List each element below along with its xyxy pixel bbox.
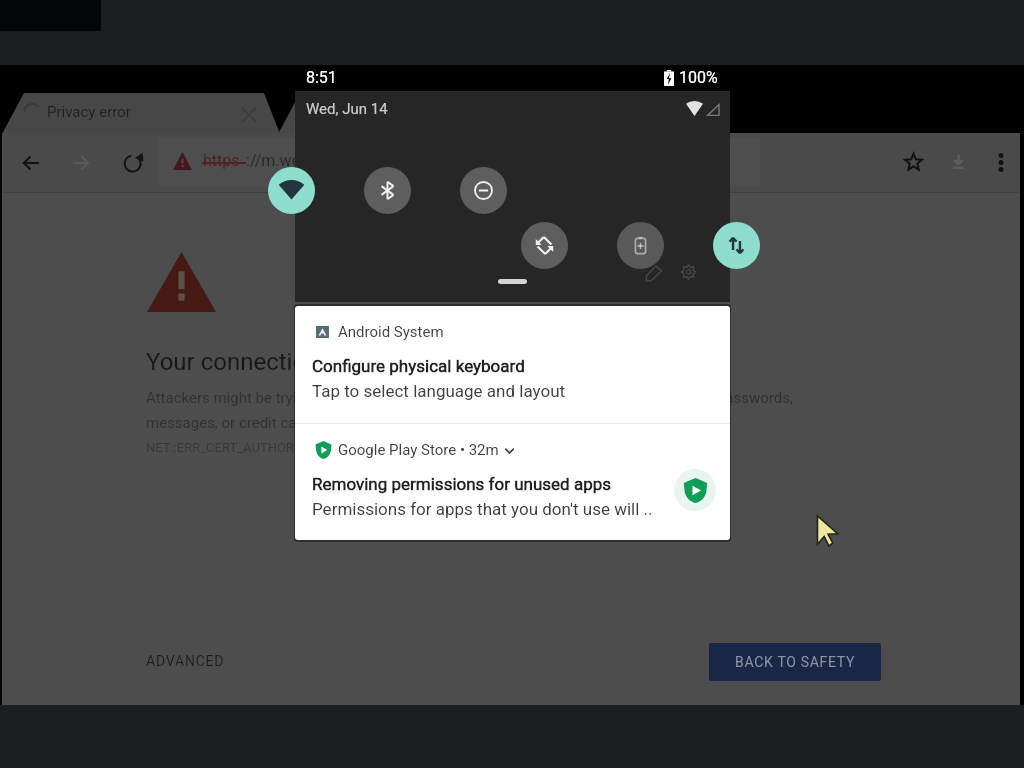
staticText: ://m.website.com: [246, 151, 371, 170]
staticText: Android System: [338, 323, 444, 341]
staticText: Permissions for apps that you don't use …: [312, 499, 653, 519]
button[interactable]: [295, 306, 730, 423]
button[interactable]: ADVANCED: [146, 653, 225, 669]
button[interactable]: BACK TO SAFETY: [709, 643, 881, 681]
button[interactable]: [295, 424, 730, 537]
staticText: Privacy error: [47, 103, 131, 121]
staticText: Attackers might be trying to steal your …: [146, 389, 793, 407]
staticText: Tap to select language and layout: [312, 381, 566, 401]
button[interactable]: Back: [21, 153, 41, 173]
button[interactable]: Close tab: [236, 102, 262, 128]
button[interactable]: Reload: [123, 152, 143, 172]
button[interactable]: Privacy error: [47, 103, 131, 121]
button[interactable]: Do not disturb: [460, 167, 507, 214]
staticText: BACK TO SAFETY: [735, 654, 856, 670]
button[interactable]: [158, 138, 760, 185]
button[interactable]: Bookmark: [903, 152, 924, 173]
staticText: NET::ERR_CERT_AUTHORITY_INVALID: [146, 440, 367, 455]
button[interactable]: Bluetooth: [364, 167, 411, 214]
button[interactable]: Mobile data: [713, 222, 760, 269]
button[interactable]: Wi-Fi: [268, 167, 315, 214]
staticText: ADVANCED: [146, 653, 225, 669]
staticText: 8:51: [306, 68, 337, 87]
staticText: Removing permissions for unused apps: [312, 474, 612, 494]
staticText: 100%: [679, 68, 718, 87]
button[interactable]: Forward: [71, 153, 91, 173]
staticText: messages, or credit cards). Learn more: [146, 414, 407, 432]
staticText: Google Play Store • 32m: [338, 441, 499, 459]
staticText: https: [203, 151, 240, 170]
staticText: Wed, Jun 14: [306, 100, 388, 118]
button[interactable]: Downloads: [948, 151, 969, 172]
staticText: Configure physical keyboard: [312, 356, 525, 376]
staticText: Your connection is not private: [146, 348, 463, 376]
button[interactable]: Auto rotate: [521, 222, 568, 269]
button[interactable]: Battery saver: [617, 222, 664, 269]
button[interactable]: More options: [988, 150, 1013, 175]
